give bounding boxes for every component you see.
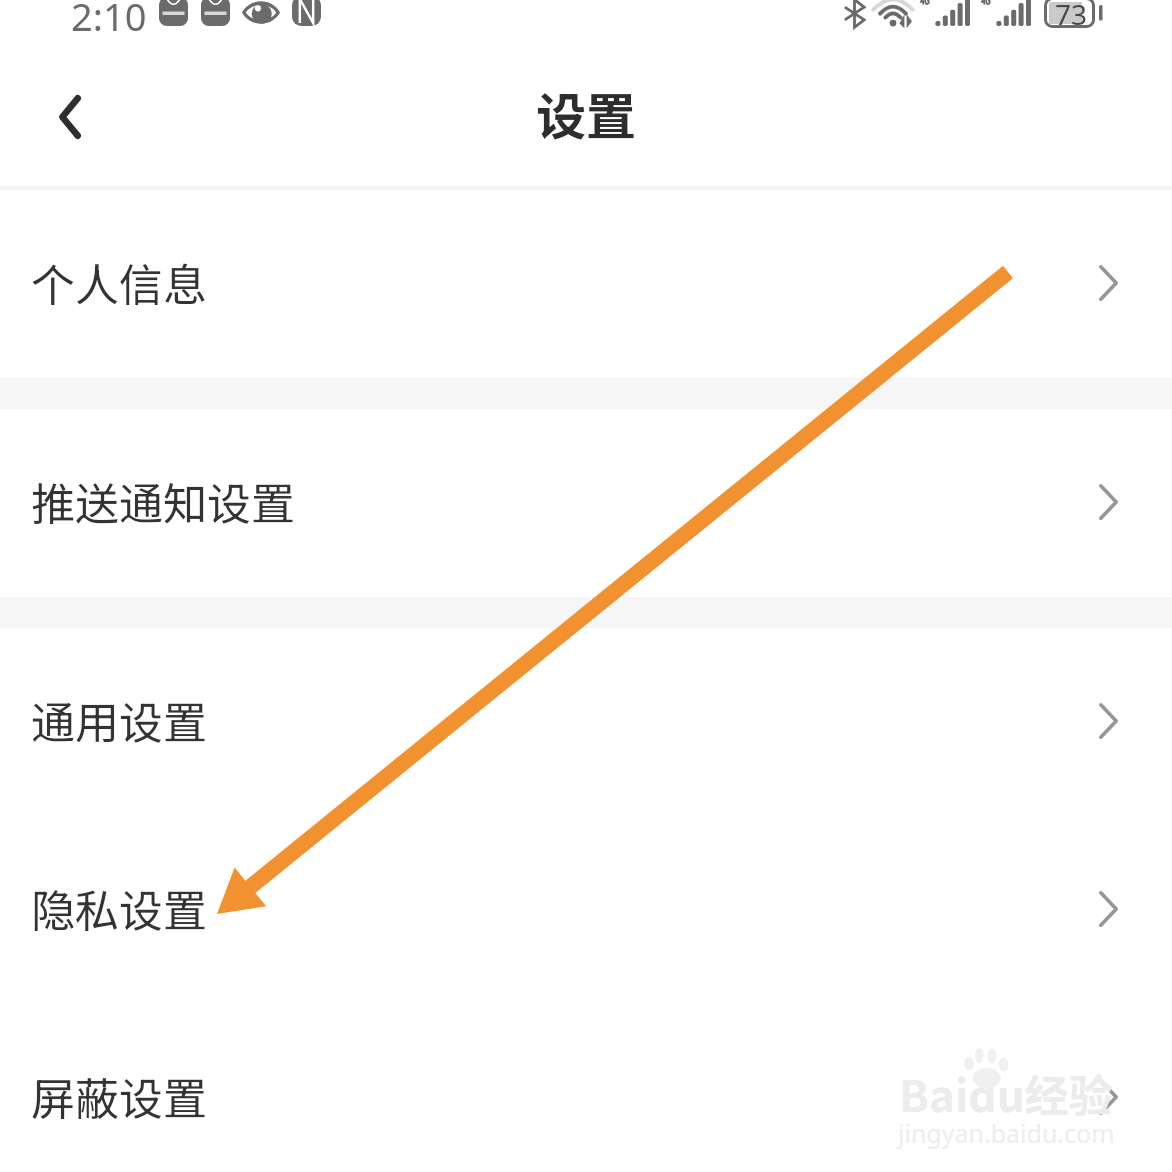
staticText: 屏蔽设置 — [31, 1064, 207, 1128]
button[interactable]: 个人信息 — [0, 190, 1172, 378]
staticText: 73 — [1055, 0, 1088, 26]
button[interactable]: 推送通知设置 — [0, 409, 1172, 597]
staticText: jingyan.baidu.com — [898, 1116, 1115, 1150]
button[interactable]: 隐私设置 — [0, 816, 1172, 1004]
button[interactable]: 通用设置 — [0, 628, 1172, 816]
staticText: 设置 — [536, 77, 636, 149]
button[interactable]: Back — [36, 72, 104, 142]
staticText: 通用设置 — [31, 688, 207, 752]
staticText: 个人信息 — [31, 250, 207, 314]
staticText: Baidu经验 — [899, 1061, 1113, 1125]
staticText: 隐私设置 — [31, 876, 207, 940]
button[interactable]: 屏蔽设置 — [0, 1004, 1172, 1172]
staticText: 2:10 — [71, 0, 147, 36]
staticText: 推送通知设置 — [31, 469, 295, 533]
